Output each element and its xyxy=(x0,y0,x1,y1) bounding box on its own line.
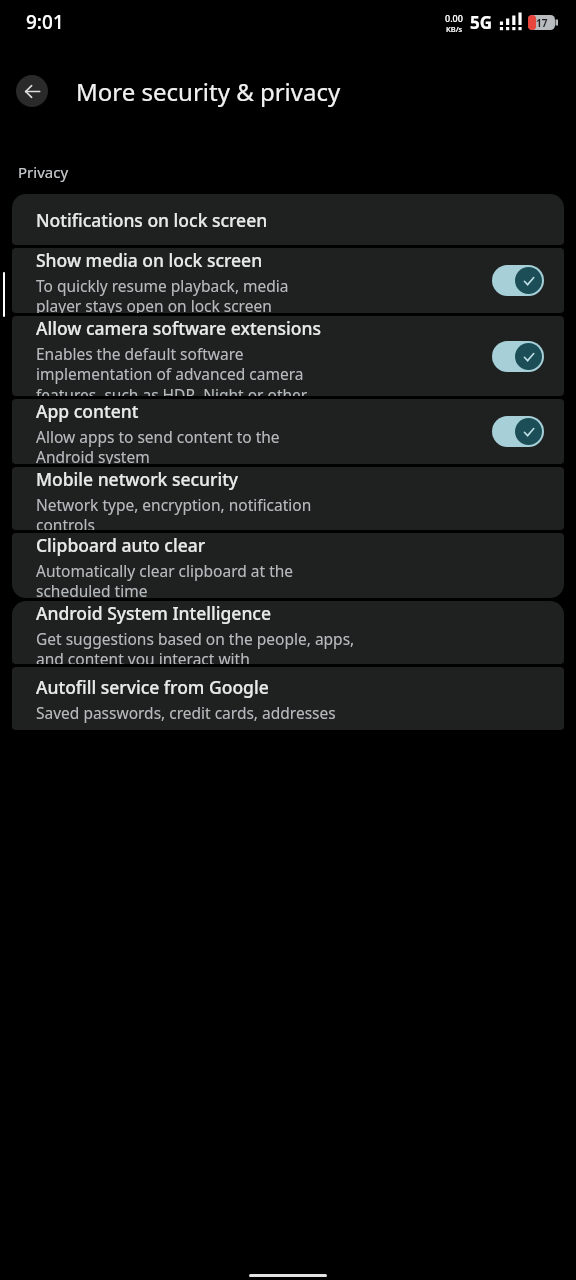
button[interactable]: Back xyxy=(16,75,48,107)
button[interactable]: Autofill service from Google xyxy=(12,667,564,730)
staticText: Android System Intelligence xyxy=(36,601,271,625)
button[interactable]: Show media on lock screen xyxy=(12,248,564,313)
staticText: 0.00 xyxy=(445,12,463,24)
staticText: 9:01 xyxy=(26,9,64,35)
staticText: To quickly resume playback, media player… xyxy=(36,275,289,313)
staticText: Mobile network security xyxy=(36,467,239,491)
staticText: Get suggestions based on the people, app… xyxy=(36,628,355,664)
staticText: Allow camera software extensions xyxy=(36,316,322,340)
button[interactable]: Toggle xyxy=(492,416,544,447)
button[interactable]: Mobile network security xyxy=(12,467,564,530)
button[interactable]: Allow camera software extensions xyxy=(12,316,564,396)
staticText: 17 xyxy=(536,16,548,30)
staticText: Privacy xyxy=(18,162,69,182)
staticText: KB/s xyxy=(446,24,463,34)
staticText: 5G xyxy=(470,11,493,34)
button[interactable]: App content xyxy=(12,399,564,464)
staticText: Autofill service from Google xyxy=(36,675,269,699)
button[interactable]: Toggle xyxy=(492,341,544,372)
staticText: More security & privacy xyxy=(76,75,341,108)
staticText: Notifications on lock screen xyxy=(36,208,268,232)
button[interactable]: Android System Intelligence xyxy=(12,601,564,664)
staticText: Allow apps to send content to the Androi… xyxy=(36,426,280,464)
button[interactable]: Toggle xyxy=(492,265,544,296)
staticText: Show media on lock screen xyxy=(36,248,263,272)
staticText: Clipboard auto clear xyxy=(36,533,206,557)
staticText: App content xyxy=(36,399,139,423)
staticText: Network type, encryption, notification c… xyxy=(36,494,312,530)
button[interactable]: Clipboard auto clear xyxy=(12,533,564,598)
staticText: Automatically clear clipboard at the sch… xyxy=(36,560,294,598)
staticText: Enables the default software implementat… xyxy=(36,343,308,396)
button[interactable]: Notifications on lock screen xyxy=(12,194,564,245)
staticText: Saved passwords, credit cards, addresses xyxy=(36,702,336,723)
